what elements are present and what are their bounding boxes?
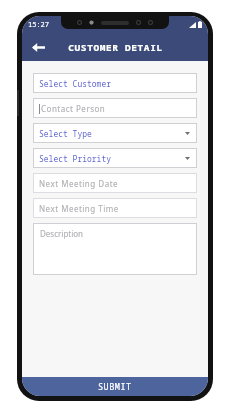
button[interactable]: SUBMIT — [22, 377, 208, 396]
button[interactable]: Next Meeting Date — [33, 173, 197, 193]
button[interactable]: Select Type — [33, 123, 197, 143]
staticText: CUSTOMER DETAIL — [68, 41, 163, 54]
staticText: Description — [40, 228, 84, 239]
staticText: Next Meeting Date — [39, 178, 119, 189]
button[interactable]: Description — [33, 223, 197, 275]
button[interactable]: Back — [27, 36, 49, 58]
staticText: Select Priority — [39, 153, 111, 164]
button[interactable]: Select Customer — [33, 73, 197, 93]
staticText: Next Meeting Time — [39, 203, 119, 214]
staticText: SUBMIT — [98, 381, 132, 393]
staticText: 15:27 — [28, 20, 49, 30]
staticText: Select Customer — [39, 78, 111, 89]
staticText: Contact Person — [41, 103, 106, 114]
button[interactable]: Next Meeting Time — [33, 198, 197, 218]
button[interactable]: Select Priority — [33, 148, 197, 168]
staticText: Select Type — [39, 128, 92, 139]
